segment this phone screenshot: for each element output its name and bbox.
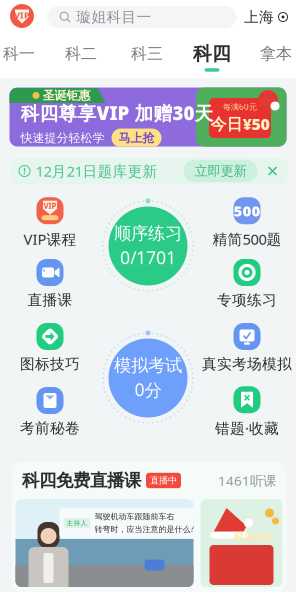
button[interactable]: 图标技巧 <box>2 323 98 373</box>
staticText: 精简500题 <box>212 229 281 249</box>
staticText: VIP课程 <box>23 229 76 249</box>
button[interactable]: 直播课 <box>2 259 98 309</box>
staticText: 转弯时，应当注意的是什么? <box>94 524 193 534</box>
button[interactable]: 科二 <box>52 42 110 72</box>
button[interactable]: 立即更新 <box>183 160 257 182</box>
staticText: 考前秘卷 <box>20 419 80 437</box>
staticText: 图标技巧 <box>20 355 80 373</box>
staticText: 上海 <box>244 8 274 26</box>
staticText: 快速提分轻松学 <box>20 130 104 145</box>
staticText: 科四免费直播课 <box>22 470 141 491</box>
button[interactable]: 500 <box>199 198 295 248</box>
staticText: 真实考场模拟 <box>202 355 292 373</box>
staticText: VIP <box>14 9 30 21</box>
button[interactable]: 关闭 <box>262 161 282 181</box>
staticText: 0/1701 <box>120 246 176 269</box>
button[interactable]: 科四VIP 优惠 <box>200 499 282 587</box>
button[interactable]: 错题·收藏 <box>199 387 295 437</box>
staticText: 直播中 <box>150 475 177 486</box>
button[interactable]: 科三 <box>118 42 176 72</box>
staticText: 科三 <box>131 44 163 64</box>
staticText: 顺序练习 <box>114 223 182 244</box>
staticText: 科二 <box>65 44 97 64</box>
staticText: 璇姐科目一 <box>76 8 151 26</box>
staticText: 模拟考试 <box>114 355 182 376</box>
button[interactable]: 专项练习 <box>199 259 295 309</box>
staticText: 科一 <box>3 44 35 64</box>
staticText: 马上抢 <box>118 130 154 145</box>
button[interactable]: 璇姐科目一 <box>47 6 236 28</box>
staticText: 专项练习 <box>217 291 277 309</box>
button[interactable]: 考前秘卷 <box>2 387 98 437</box>
staticText: 立即更新 <box>194 163 246 179</box>
button[interactable]: 上海 <box>244 6 288 28</box>
staticText: 1461听课 <box>218 472 276 489</box>
button[interactable]: VIP <box>2 198 98 248</box>
button[interactable]: 拿本 <box>247 42 296 72</box>
staticText: 每满60元 <box>223 102 257 112</box>
staticText: 主持人 <box>66 519 87 527</box>
button[interactable]: 每满60元 <box>9 87 286 146</box>
staticText: 500 <box>233 201 260 220</box>
staticText: 科四尊享VIP 加赠30天 <box>20 101 213 125</box>
staticText: 驾驶机动车跟随前车右 <box>94 512 174 522</box>
button[interactable]: 直播课视频 <box>15 499 193 587</box>
button[interactable]: VIP 会员 <box>7 2 37 30</box>
staticText: VIP <box>43 200 56 211</box>
staticText: 错题·收藏 <box>215 418 279 438</box>
button[interactable]: 科一 <box>0 42 48 72</box>
button[interactable]: 顺序练习 <box>98 196 198 296</box>
button[interactable]: 真实考场模拟 <box>199 323 295 373</box>
staticText: 科四VIP <box>233 530 273 544</box>
staticText: 拿本 <box>260 44 292 64</box>
staticText: 今日¥50 <box>210 113 269 134</box>
staticText: 圣诞钜惠 <box>42 88 90 103</box>
staticText: 直播课 <box>27 291 72 309</box>
button[interactable]: 模拟考试 <box>98 328 198 428</box>
staticText: 科四 <box>193 42 231 65</box>
button[interactable]: 科四 <box>183 42 241 72</box>
staticText: 0分 <box>134 378 161 401</box>
staticText: 12月21日题库更新 <box>35 161 157 181</box>
